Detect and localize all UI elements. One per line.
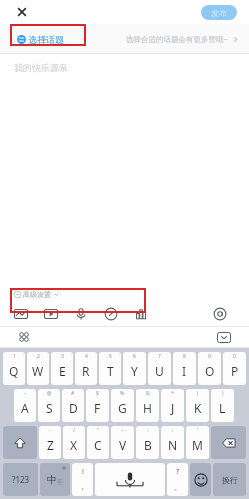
staticText: ! xyxy=(82,467,84,477)
staticText: 4 xyxy=(85,353,88,360)
button[interactable]: 换行 xyxy=(213,463,246,496)
button[interactable]: 9 xyxy=(198,352,221,385)
button[interactable]: ( xyxy=(186,389,209,422)
staticText: Z xyxy=(47,437,54,453)
staticText: V xyxy=(119,437,127,453)
button[interactable]: ~ xyxy=(14,389,36,422)
button[interactable]: Emoji xyxy=(190,463,211,496)
staticText: ? xyxy=(176,467,180,477)
button[interactable]: " xyxy=(87,426,109,459)
staticText: C xyxy=(94,437,102,453)
staticText: R xyxy=(82,363,90,379)
button[interactable]: 6 xyxy=(123,352,146,385)
button[interactable]: 0 xyxy=(223,352,246,385)
staticText: 选择合适的话题会有更多赞哦~ xyxy=(126,34,228,44)
staticText: D xyxy=(69,400,78,416)
staticText: G xyxy=(118,400,127,416)
button[interactable]: 7 xyxy=(148,352,171,385)
staticText: 2 xyxy=(37,353,40,360)
staticText: 高级设置 xyxy=(23,290,51,299)
button[interactable]: ! xyxy=(72,463,93,496)
button[interactable]: More tools xyxy=(18,331,30,343)
staticText: L xyxy=(219,400,226,416)
button[interactable]: Shift xyxy=(3,426,37,459)
button[interactable]: % xyxy=(111,389,134,422)
staticText: P xyxy=(231,363,239,379)
button[interactable]: ~ xyxy=(111,426,134,459)
staticText: M xyxy=(192,437,203,453)
button[interactable]: Space xyxy=(95,463,165,496)
button[interactable]: * xyxy=(161,389,184,422)
button[interactable]: $ xyxy=(86,389,109,422)
staticText: : xyxy=(147,427,149,434)
staticText: # xyxy=(71,390,75,397)
staticText: E xyxy=(59,363,66,379)
staticText: 英 xyxy=(57,478,63,486)
button[interactable]: Mention xyxy=(213,307,227,321)
staticText: 9 xyxy=(208,353,211,360)
staticText: - xyxy=(49,427,51,434)
staticText: F xyxy=(94,400,101,416)
staticText: N xyxy=(168,437,178,453)
button[interactable]: 8 xyxy=(173,352,196,385)
button[interactable]: 高级设置 xyxy=(14,290,59,299)
staticText: 发布 xyxy=(211,8,227,18)
button[interactable]: 发布 xyxy=(201,5,237,20)
button[interactable]: Voice xyxy=(74,307,88,321)
button[interactable]: 4 xyxy=(75,352,97,385)
staticText: ~ xyxy=(121,427,124,434)
staticText: ?123 xyxy=(12,474,30,485)
button[interactable]: & xyxy=(136,389,159,422)
staticText: ( xyxy=(197,390,199,397)
button[interactable]: : xyxy=(136,426,159,459)
staticText: ' xyxy=(197,427,199,434)
button[interactable]: - xyxy=(39,426,61,459)
staticText: / xyxy=(73,427,75,434)
staticText: B xyxy=(144,437,152,453)
staticText: 选择话题 xyxy=(28,34,64,45)
staticText: 5 xyxy=(109,353,112,360)
button[interactable]: 选择话题 xyxy=(0,24,249,54)
staticText: % xyxy=(120,390,125,397)
button[interactable]: 2 xyxy=(27,352,49,385)
button[interactable]: ? xyxy=(167,463,188,496)
button[interactable]: # xyxy=(62,389,84,422)
button[interactable]: Hide keyboard xyxy=(217,332,231,343)
staticText: W xyxy=(32,363,44,379)
button[interactable]: Mood xyxy=(104,307,118,321)
staticText: 0 xyxy=(233,353,236,360)
staticText: S xyxy=(46,400,53,416)
staticText: U xyxy=(155,363,164,379)
button[interactable]: 3 xyxy=(51,352,73,385)
staticText: & xyxy=(146,390,150,397)
staticText: X xyxy=(70,437,78,453)
staticText: , xyxy=(82,482,84,492)
staticText: ; xyxy=(172,427,174,434)
button[interactable]: 1 xyxy=(3,352,25,385)
button[interactable]: ) xyxy=(211,389,234,422)
staticText: @ xyxy=(47,390,52,397)
button[interactable]: Vote xyxy=(134,307,148,321)
button[interactable]: Close xyxy=(14,4,30,20)
button[interactable]: ' xyxy=(186,426,209,459)
staticText: 换行 xyxy=(222,475,238,485)
button[interactable]: / xyxy=(63,426,85,459)
staticText: Q xyxy=(9,363,19,379)
staticText: I xyxy=(182,363,187,379)
staticText: 中 xyxy=(47,473,57,486)
button[interactable]: Add image xyxy=(14,307,28,321)
staticText: J xyxy=(171,400,175,416)
staticText: * xyxy=(171,390,174,397)
button[interactable]: Backspace xyxy=(211,426,246,459)
button[interactable]: Add video xyxy=(44,307,58,321)
button[interactable]: ?123 xyxy=(3,463,38,496)
button[interactable]: 中 xyxy=(40,463,70,496)
staticText: H xyxy=(143,400,152,416)
button[interactable]: @ xyxy=(38,389,60,422)
staticText: 我的快乐源泉 xyxy=(14,62,68,73)
staticText: 1 xyxy=(13,353,16,360)
button[interactable]: ; xyxy=(161,426,184,459)
staticText: T xyxy=(107,363,114,379)
button[interactable]: 5 xyxy=(99,352,121,385)
staticText: A xyxy=(21,400,29,416)
